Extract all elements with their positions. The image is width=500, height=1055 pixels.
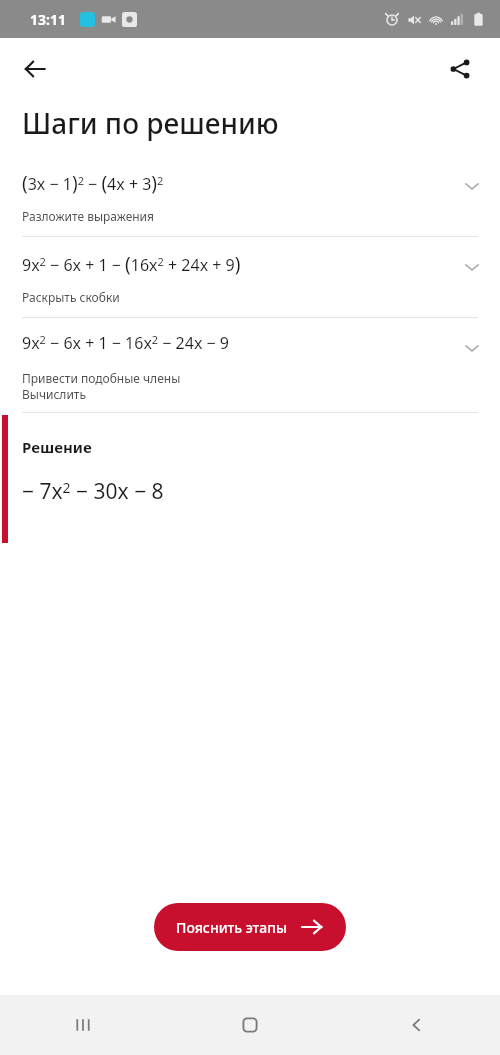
staticText: Разложите выражения xyxy=(22,208,155,224)
staticText: (3x − 1)2 − (4x + 3)2 xyxy=(22,170,164,196)
button[interactable]: 9x2 − 6x + 1 − 16x2 − 24x − 9 xyxy=(0,318,500,412)
button[interactable]: 9x2 − 6x + 1 − (16x2 + 24x + 9) xyxy=(0,237,500,317)
button[interactable]: Пояснить этапы xyxy=(154,903,346,951)
button[interactable]: Share xyxy=(437,46,483,92)
button[interactable]: Back xyxy=(333,995,500,1055)
staticText: Вычислить xyxy=(22,386,86,402)
staticText: Привести подобные члены xyxy=(22,370,181,386)
staticText: 9x2 − 6x + 1 − (16x2 + 24x + 9) xyxy=(22,251,241,277)
staticText: Пояснить этапы xyxy=(176,918,287,937)
staticText: 9x2 − 6x + 1 − 16x2 − 24x − 9 xyxy=(22,332,230,354)
button[interactable]: (3x − 1)2 − (4x + 3)2 xyxy=(0,156,500,236)
staticText: Раскрыть скобки xyxy=(22,289,120,305)
staticText: 13:11 xyxy=(30,10,66,29)
staticText: Решение xyxy=(22,437,92,457)
button[interactable]: Home xyxy=(166,995,333,1055)
button[interactable]: Recents xyxy=(0,995,166,1055)
staticText: Шаги по решению xyxy=(22,104,279,142)
staticText: − 7x2 − 30x − 8 xyxy=(22,477,164,506)
button[interactable]: Back xyxy=(12,46,58,92)
